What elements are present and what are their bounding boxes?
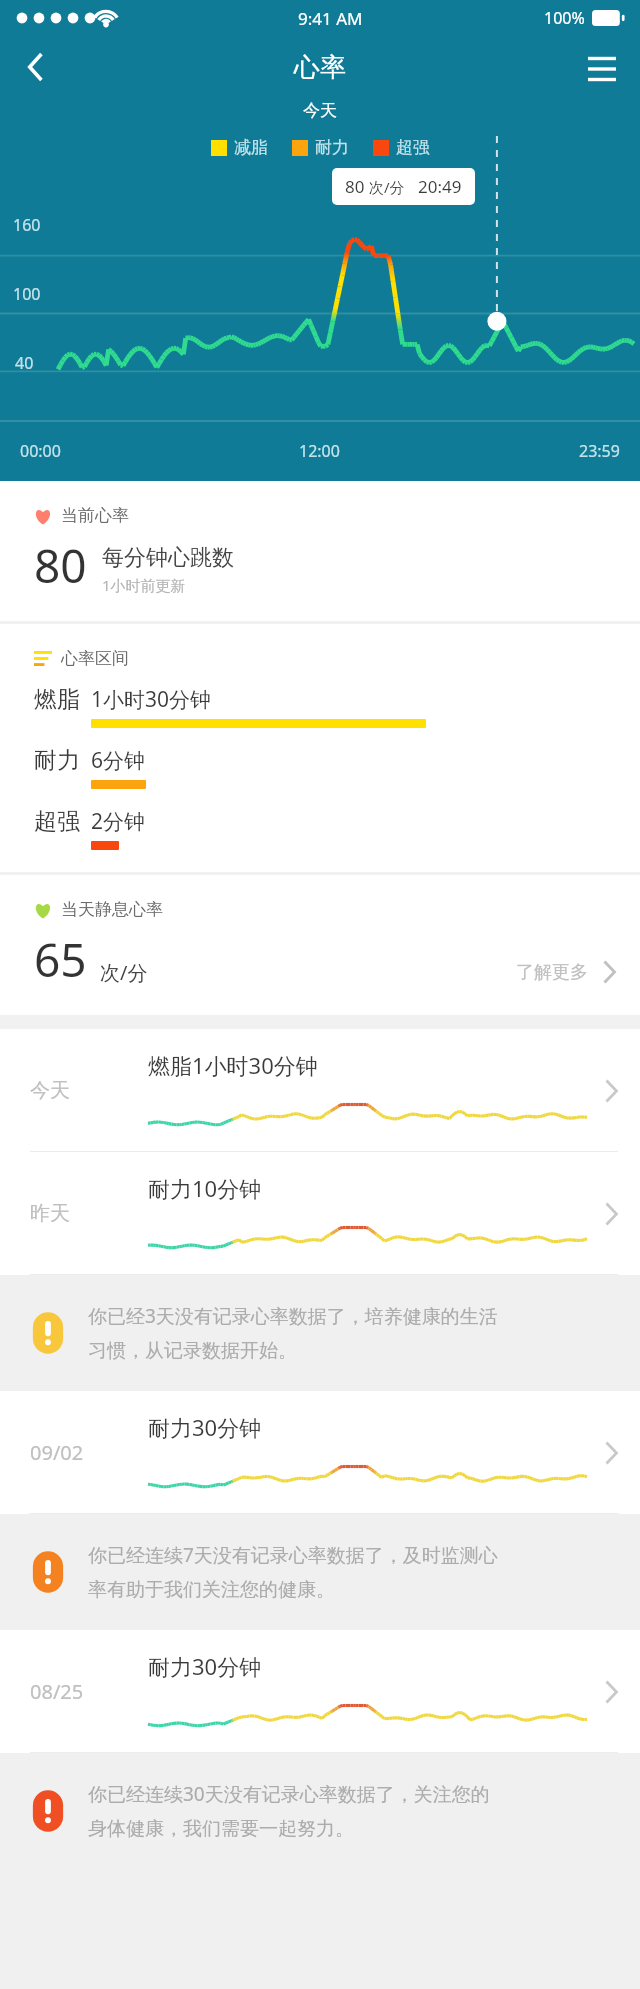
button[interactable]: 你已经连续7天没有记录心率数据了，及时监测心 率有助于我们关注您的健康。: [0, 1514, 640, 1630]
staticText: 1小时30分钟: [91, 685, 212, 714]
button[interactable]: 你已经连续30天没有记录心率数据了，关注您的 身体健康，我们需要一起努力。: [0, 1753, 640, 1869]
staticText: 耐力30分钟: [148, 1412, 262, 1442]
staticText: 100%: [544, 7, 585, 29]
staticText: 2分钟: [91, 807, 146, 836]
button[interactable]: 09/02: [0, 1391, 640, 1514]
staticText: 心率区间: [61, 648, 129, 669]
button[interactable]: 当前心率: [0, 481, 640, 621]
staticText: 09/02: [30, 1439, 120, 1466]
staticText: 耐力: [315, 137, 349, 158]
staticText: 了解更多: [516, 961, 588, 984]
button[interactable]: 心率区间: [0, 624, 640, 872]
staticText: 减脂: [234, 137, 268, 158]
staticText: 当前心率: [61, 505, 129, 526]
staticText: 100: [13, 283, 41, 305]
staticText: 你已经连续30天没有记录心率数据了，关注您的 身体健康，我们需要一起努力。: [88, 1781, 490, 1841]
button[interactable]: 你已经3天没有记录心率数据了，培养健康的生活 习惯，从记录数据开始。: [0, 1275, 640, 1391]
staticText: 160: [13, 214, 41, 236]
button[interactable]: 08/25: [0, 1630, 640, 1753]
staticText: 23:59: [579, 440, 620, 462]
staticText: 40: [15, 352, 34, 374]
staticText: 80: [345, 175, 365, 198]
staticText: 燃脂1小时30分钟: [148, 1050, 318, 1080]
staticText: 耐力10分钟: [148, 1173, 262, 1203]
staticText: 6分钟: [91, 746, 146, 775]
button[interactable]: 当天静息心率: [0, 875, 640, 1015]
button[interactable]: 今天: [0, 1029, 640, 1152]
staticText: 80: [34, 534, 87, 597]
staticText: 今天: [30, 1078, 120, 1103]
staticText: 65: [34, 928, 87, 991]
staticText: 20:49: [418, 175, 462, 198]
staticText: 12:00: [299, 440, 340, 462]
staticText: 9:41 AM: [298, 7, 363, 30]
staticText: 你已经连续7天没有记录心率数据了，及时监测心 率有助于我们关注您的健康。: [88, 1542, 498, 1602]
staticText: 耐力: [34, 746, 80, 775]
staticText: 超强: [34, 807, 80, 836]
staticText: 心率: [294, 51, 346, 84]
staticText: 当天静息心率: [61, 899, 163, 920]
staticText: 08/25: [30, 1678, 120, 1705]
staticText: 耐力30分钟: [148, 1651, 262, 1681]
button[interactable]: 昨天: [0, 1152, 640, 1275]
staticText: 燃脂: [34, 685, 80, 714]
staticText: 次/分: [369, 177, 405, 197]
staticText: 1小时前更新: [102, 575, 186, 595]
button[interactable]: Menu: [574, 39, 630, 95]
button[interactable]: Back: [8, 39, 64, 95]
staticText: 次/分: [100, 959, 148, 986]
staticText: 你已经3天没有记录心率数据了，培养健康的生活 习惯，从记录数据开始。: [88, 1303, 498, 1363]
staticText: 今天: [0, 100, 640, 121]
staticText: 昨天: [30, 1201, 120, 1226]
staticText: 每分钟心跳数: [102, 544, 234, 572]
staticText: 超强: [396, 137, 430, 158]
staticText: 00:00: [20, 440, 61, 462]
